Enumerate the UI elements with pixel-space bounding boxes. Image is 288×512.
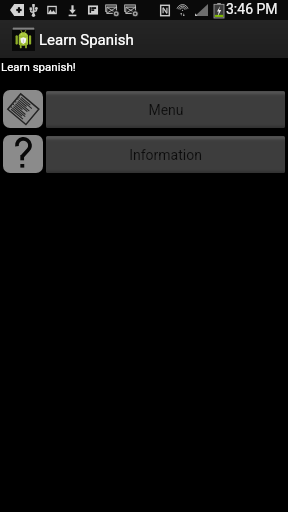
staticText: Menu	[148, 102, 184, 118]
button[interactable]: Menu	[46, 91, 285, 128]
button[interactable]: Information	[46, 136, 285, 173]
button[interactable]: Information	[3, 135, 43, 173]
staticText: 3:46 PM	[226, 1, 278, 17]
button[interactable]: Menu	[3, 90, 43, 128]
staticText: Information	[129, 147, 202, 163]
staticText: Learn Spanish	[39, 31, 134, 49]
staticText: Learn spanish!	[1, 60, 76, 73]
